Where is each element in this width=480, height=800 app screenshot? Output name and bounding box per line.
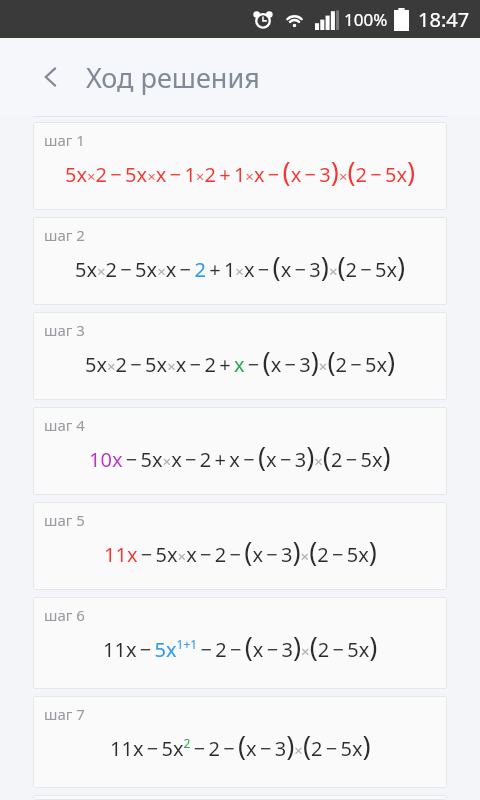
button[interactable]: шаг 7 xyxy=(33,696,447,788)
button[interactable]: шаг 4 xyxy=(33,407,447,495)
staticText: 5x×2 − 5x×x − 2 + x − (x − 3)×(2 − 5x) xyxy=(85,343,396,380)
staticText: 100% xyxy=(344,8,388,31)
staticText: шаг 3 xyxy=(44,320,85,340)
staticText: 5x×2 − 5x×x − 2 + 1×x − (x − 3)×(2 − 5x) xyxy=(75,248,406,285)
staticText: 11x − 5x1+1 − 2 − (x − 3)×(2 − 5x) xyxy=(103,628,378,665)
staticText: 5x×2 − 5x×x − 1×2 + 1×x − (x − 3)×(2 − 5… xyxy=(65,153,416,190)
button[interactable]: шаг 8 xyxy=(33,795,447,800)
button[interactable]: шаг 5 xyxy=(33,502,447,590)
button[interactable]: шаг 3 xyxy=(33,312,447,400)
button[interactable]: шаг 1 xyxy=(33,122,447,210)
staticText: шаг 4 xyxy=(44,415,85,435)
staticText: 10x − 5x×x − 2 + x − (x − 3)×(2 − 5x) xyxy=(89,438,391,475)
staticText: Ход решения xyxy=(86,59,260,96)
button[interactable]: шаг 6 xyxy=(33,597,447,689)
staticText: 11x − 5x2 − 2 − (x − 3)×(2 − 5x) xyxy=(110,727,371,764)
button[interactable]: шаг 2 xyxy=(33,217,447,305)
button[interactable]: Back xyxy=(28,54,74,100)
staticText: 11x − 5x×x − 2 − (x − 3)×(2 − 5x) xyxy=(104,533,377,570)
staticText: шаг 6 xyxy=(44,605,85,625)
staticText: шаг 5 xyxy=(44,510,85,530)
staticText: шаг 1 xyxy=(44,130,85,150)
staticText: шаг 2 xyxy=(44,225,85,245)
staticText: 18:47 xyxy=(418,6,470,33)
staticText: шаг 7 xyxy=(44,704,85,724)
